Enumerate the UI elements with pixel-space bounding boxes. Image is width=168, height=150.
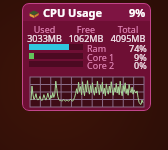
staticText: 4095MB <box>107 32 149 44</box>
staticText: Free <box>65 23 107 35</box>
staticText: Ram <box>87 42 107 54</box>
staticText: 74% <box>129 42 147 54</box>
staticText: 9% <box>134 51 147 63</box>
button[interactable]: CPU Usage <box>22 3 151 21</box>
staticText: 0% <box>134 59 147 71</box>
staticText: Core 2 <box>87 59 115 71</box>
staticText: 9% <box>129 5 146 20</box>
staticText: Used <box>24 23 65 35</box>
staticText: Core 1 <box>87 51 115 63</box>
staticText: Total <box>107 23 149 35</box>
staticText: 1062MB <box>65 32 107 44</box>
staticText: 3033MB <box>24 32 65 44</box>
staticText: CPU Usage <box>43 5 103 20</box>
